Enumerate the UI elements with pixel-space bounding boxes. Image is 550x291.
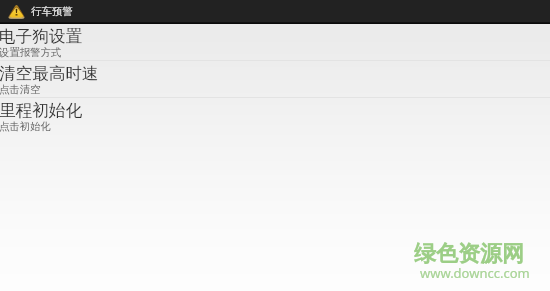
staticText: 设置报警方式 — [0, 46, 62, 59]
button[interactable]: 电子狗设置 — [0, 24, 550, 61]
staticText: 电子狗设置 — [0, 26, 82, 47]
staticText: 行车预警 — [31, 5, 73, 18]
button[interactable]: 清空最高时速 — [0, 61, 550, 98]
staticText: 清空最高时速 — [0, 63, 99, 84]
staticText: www.downcc.com — [420, 264, 530, 282]
staticText: 绿色资源网 — [414, 240, 524, 268]
staticText: 点击初始化 — [0, 120, 51, 133]
staticText: 点击清空 — [0, 83, 41, 96]
staticText: 里程初始化 — [0, 100, 82, 121]
button[interactable]: 里程初始化 — [0, 98, 550, 135]
other: Warning — [7, 3, 26, 19]
